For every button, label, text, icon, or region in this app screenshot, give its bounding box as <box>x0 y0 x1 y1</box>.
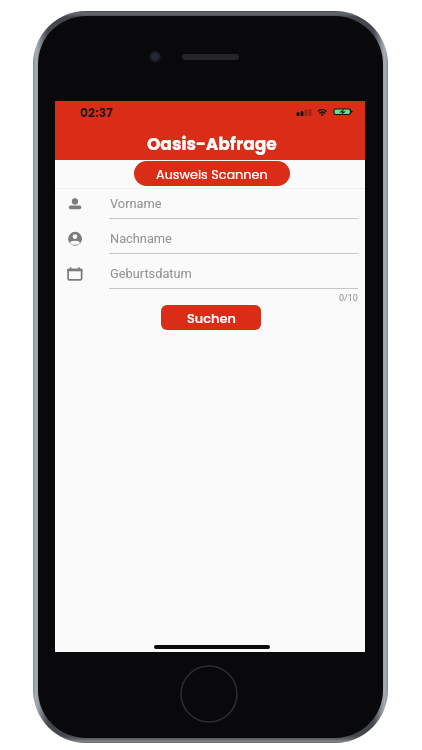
staticText: Ausweis Scannen <box>156 166 268 184</box>
button[interactable]: Vorname <box>55 194 365 229</box>
staticText: Oasis-Abfrage <box>147 132 277 156</box>
other: Nachname <box>65 230 85 250</box>
button[interactable]: Geburtsdatum <box>55 264 365 299</box>
other: Signal, WLAN und Akku <box>295 106 355 118</box>
staticText: Geburtsdatum <box>110 266 192 281</box>
staticText: 02:37 <box>80 104 113 121</box>
button[interactable]: Ausweis Scannen <box>134 161 290 186</box>
other: Vorname <box>65 193 85 213</box>
staticText: Nachname <box>110 231 172 246</box>
staticText: Suchen <box>187 309 236 327</box>
staticText: 0/10 <box>339 293 358 304</box>
other: Geburtsdatum <box>65 265 85 285</box>
staticText: Vorname <box>110 196 162 211</box>
button[interactable]: Nachname <box>55 229 365 264</box>
button[interactable]: Suchen <box>161 305 261 330</box>
button[interactable]: Home <box>179 664 239 724</box>
